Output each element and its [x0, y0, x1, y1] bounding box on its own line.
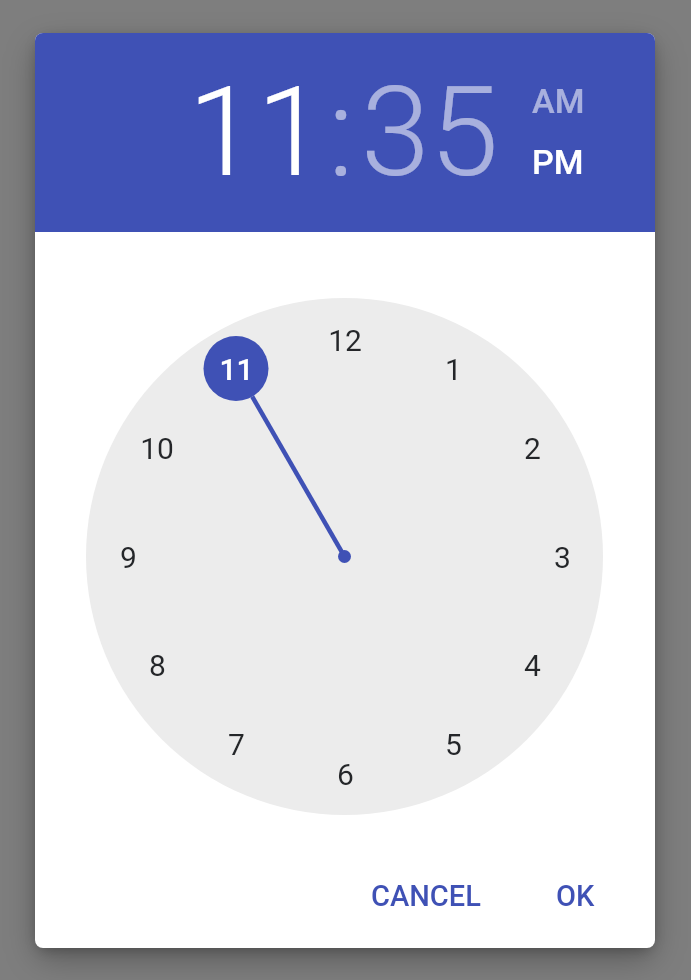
staticText: 10 [140, 431, 174, 466]
staticText: 12 [328, 323, 362, 358]
staticText: 6 [337, 757, 354, 792]
button[interactable]: PM [503, 136, 613, 188]
staticText: 11 [188, 60, 326, 205]
button[interactable]: 4 [497, 642, 567, 688]
staticText: 2 [524, 431, 541, 466]
staticText: PM [532, 142, 584, 182]
button[interactable]: 35 [300, 32, 560, 232]
staticText: 9 [120, 540, 137, 575]
button[interactable]: 3 [527, 534, 597, 580]
staticText: OK [556, 879, 595, 913]
button[interactable]: 5 [418, 721, 488, 767]
button[interactable]: 8 [122, 642, 192, 688]
staticText: 5 [445, 727, 462, 762]
staticText: 8 [149, 648, 166, 683]
staticText: 11 [219, 352, 254, 387]
staticText: 35 [361, 60, 499, 205]
button[interactable]: 12 [310, 317, 380, 363]
button[interactable]: 11 [201, 346, 271, 392]
staticText: 4 [524, 648, 541, 683]
staticText: AM [532, 81, 585, 121]
button[interactable]: 2 [497, 425, 567, 471]
staticText: CANCEL [371, 879, 481, 913]
button[interactable]: OK [525, 860, 625, 932]
staticText: 7 [228, 727, 245, 762]
button[interactable]: AM [503, 75, 613, 127]
button[interactable]: 10 [122, 425, 192, 471]
button[interactable]: 6 [310, 751, 380, 797]
button[interactable]: 1 [418, 346, 488, 392]
staticText: 1 [445, 352, 462, 387]
staticText: 3 [554, 540, 571, 575]
button[interactable]: 7 [201, 721, 271, 767]
staticText: : [328, 60, 355, 205]
button[interactable]: 11 [127, 32, 387, 232]
button[interactable]: CANCEL [351, 860, 501, 932]
button[interactable]: 9 [93, 534, 163, 580]
